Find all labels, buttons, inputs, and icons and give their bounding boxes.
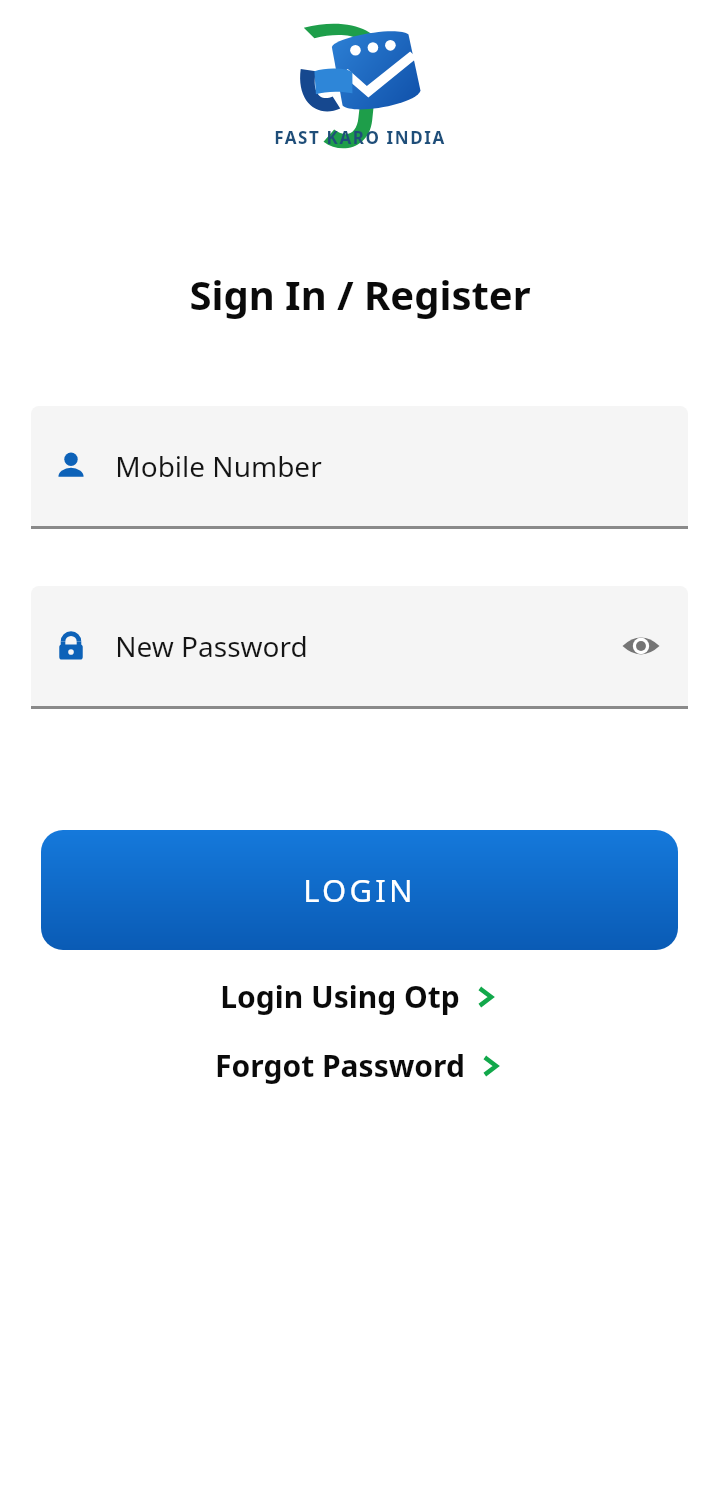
button[interactable]: LOGIN bbox=[41, 830, 678, 950]
button[interactable]: Login Using Otp bbox=[210, 972, 509, 1021]
button[interactable]: Forgot Password bbox=[205, 1041, 514, 1090]
button[interactable]: Mobile Number bbox=[31, 406, 688, 529]
staticText: Login Using Otp bbox=[220, 976, 460, 1017]
button[interactable]: Show password bbox=[617, 622, 665, 670]
staticText: Sign In / Register bbox=[189, 267, 531, 321]
staticText: LOGIN bbox=[303, 869, 416, 911]
staticText: Forgot Password bbox=[215, 1045, 465, 1086]
staticText: Mobile Number bbox=[115, 447, 322, 485]
staticText: New Password bbox=[115, 627, 308, 665]
button[interactable]: New Password bbox=[31, 586, 688, 709]
staticText: FAST KARO INDIA bbox=[274, 126, 446, 149]
